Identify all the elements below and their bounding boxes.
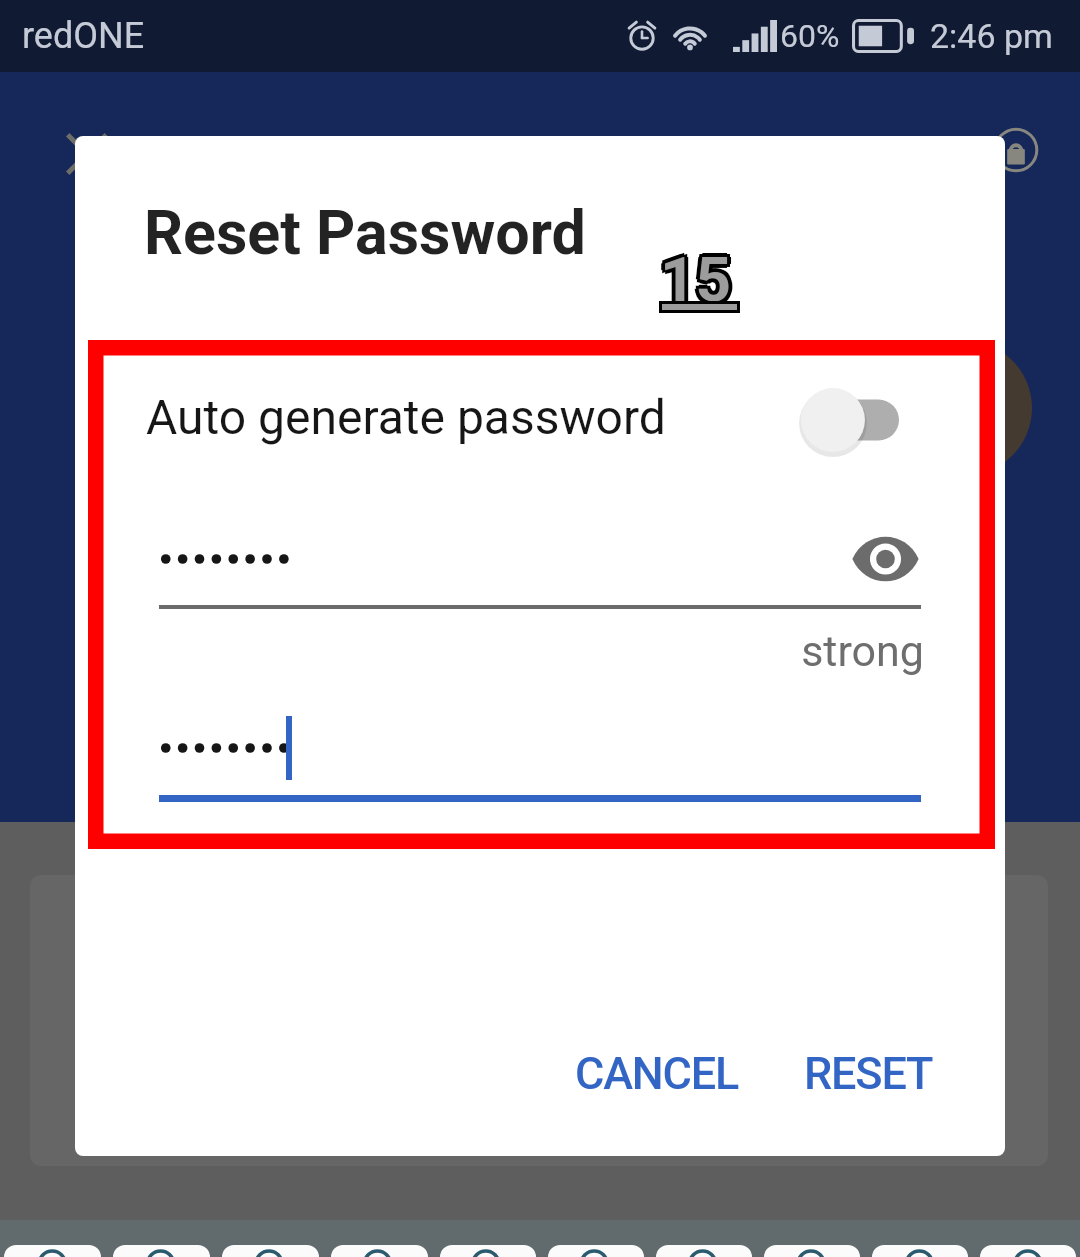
staticText: Reset Password [144,197,586,268]
staticText: strong [75,626,924,676]
button[interactable]: 0 [980,1245,1076,1257]
staticText: 15 [660,243,732,316]
staticText: 15 [663,240,735,313]
staticText: RESET [804,1047,933,1100]
button[interactable]: 3 [222,1245,319,1257]
staticText: 15 [657,240,729,313]
button[interactable]: 1 [4,1245,101,1257]
button[interactable]: 5 [440,1245,536,1257]
staticText: CANCEL [575,1047,739,1100]
button[interactable]: Auto generate password toggle [801,386,899,454]
button[interactable]: RESET [788,1028,949,1118]
staticText: 15 [663,246,735,319]
button[interactable]: 6 [548,1245,644,1257]
button[interactable]: 7 [656,1245,752,1257]
button[interactable]: 4 [331,1245,428,1257]
button[interactable]: Security [990,124,1042,176]
staticText: 15 [660,239,732,312]
staticText: 15 [660,247,732,320]
button[interactable]: Auto generate password [75,364,1005,504]
staticText: 2:46 pm [930,16,1053,56]
button[interactable]: CANCEL [559,1028,755,1118]
staticText: 15 [664,243,736,316]
staticText: 15 [656,243,728,316]
button[interactable]: 8 [764,1245,860,1257]
staticText: 15 [657,246,729,319]
staticText: 60% [780,17,840,55]
button[interactable]: 2 [113,1245,210,1257]
button[interactable]: Show password [851,528,920,590]
button[interactable]: 9 [872,1245,968,1257]
button[interactable]: Close [64,131,110,177]
staticText: Auto generate password [146,389,666,445]
staticText: redONE [22,15,145,57]
